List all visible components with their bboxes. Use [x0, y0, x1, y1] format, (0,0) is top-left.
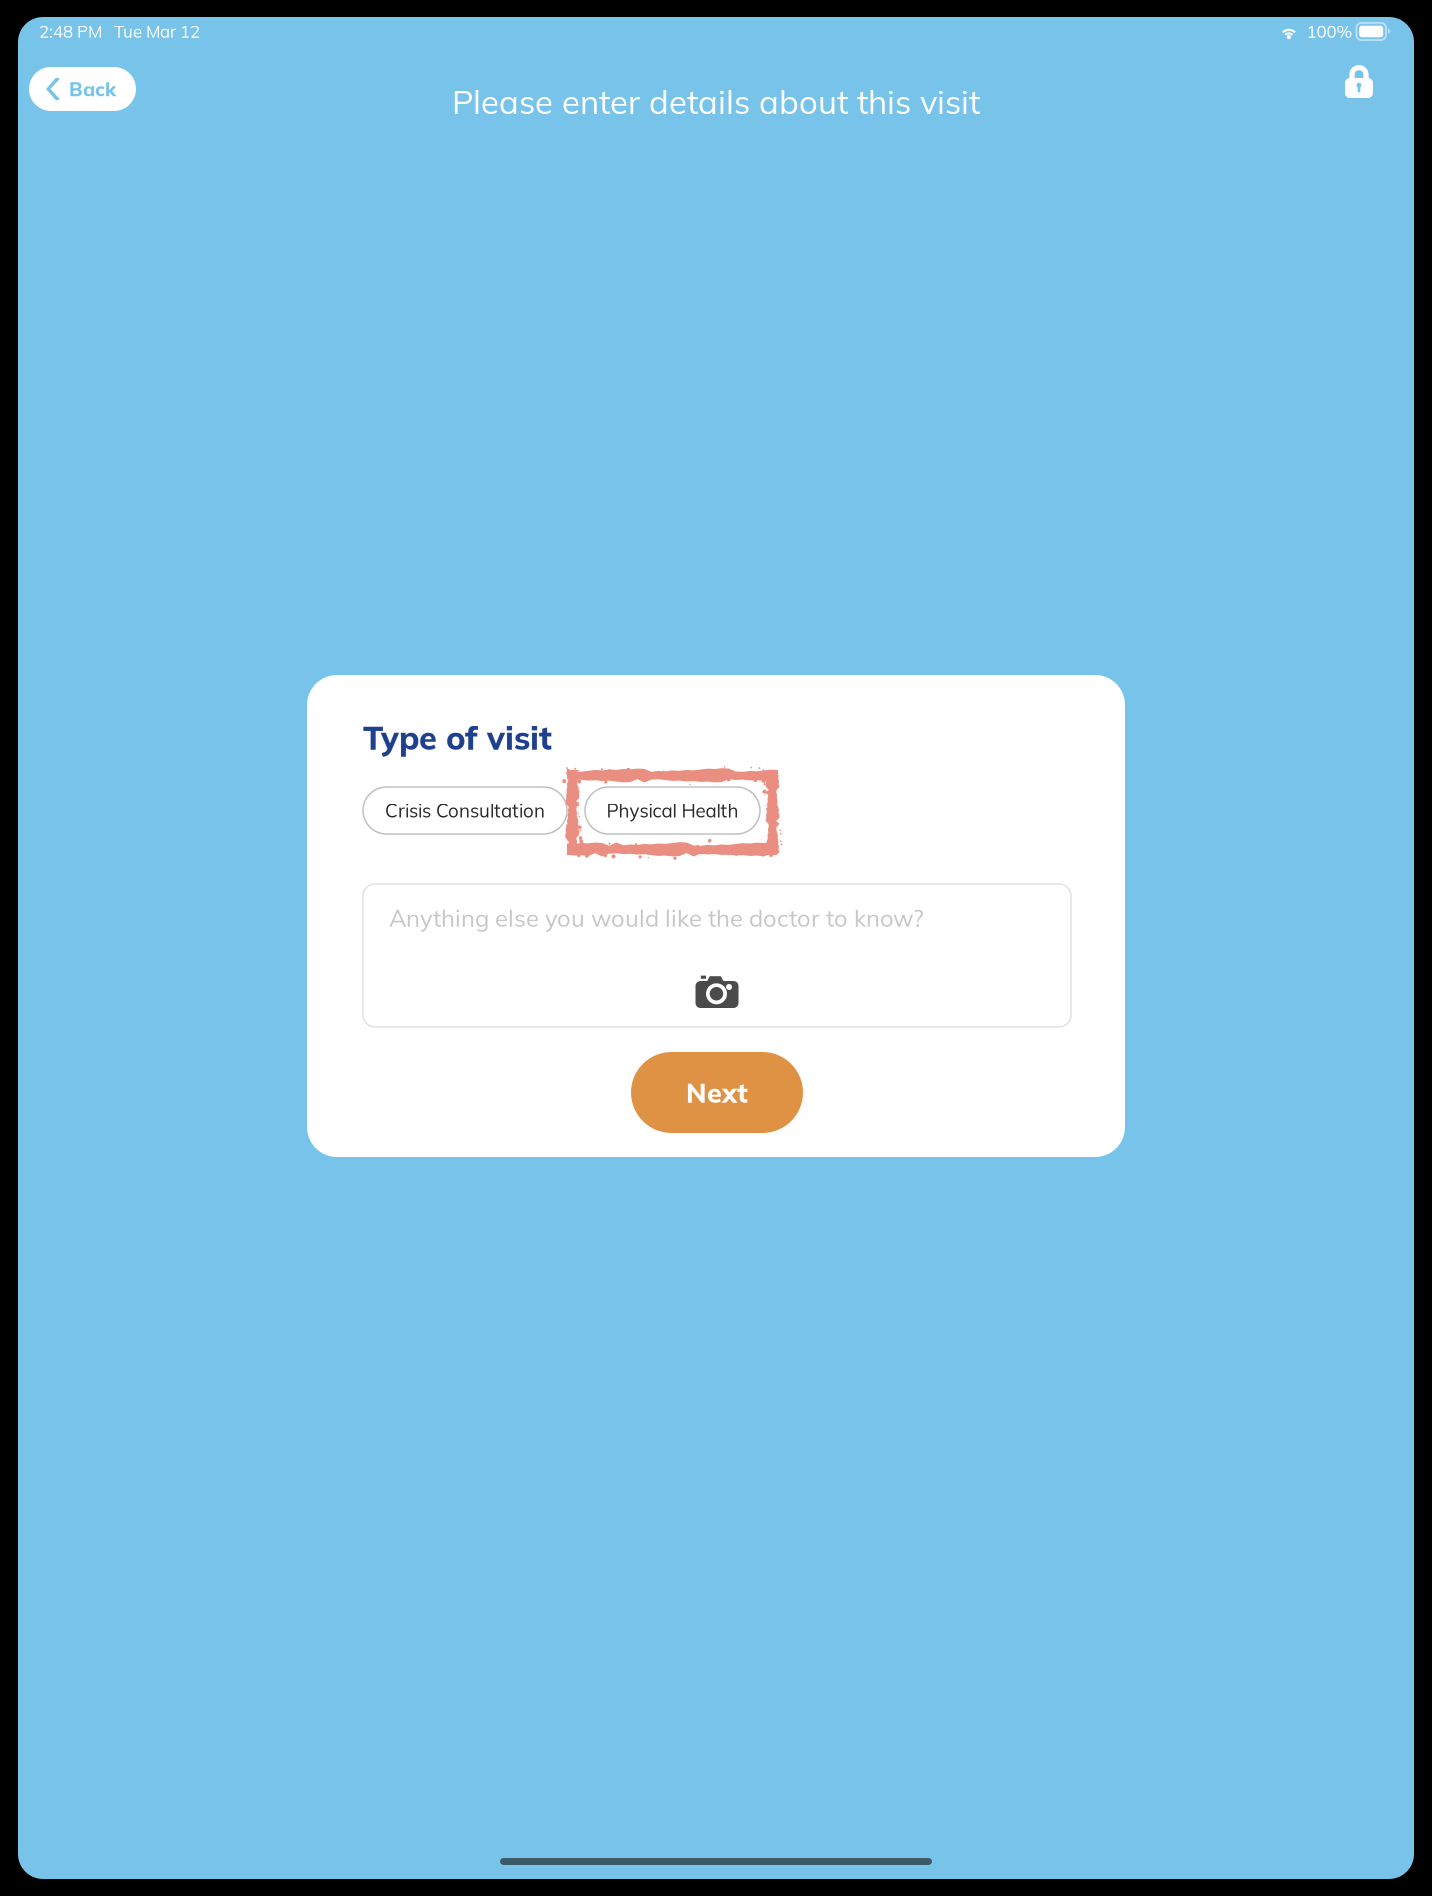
button[interactable]: Back — [29, 67, 136, 111]
button[interactable]: Add photo — [695, 975, 738, 1008]
staticText: Back — [69, 77, 116, 101]
button[interactable]: Next — [631, 1052, 803, 1133]
staticText: Type of visit — [363, 717, 552, 758]
staticText: Next — [686, 1075, 748, 1109]
button[interactable]: Physical Health — [585, 787, 760, 834]
staticText: 2:48 PM Tue Mar 12 — [39, 21, 200, 42]
staticText: 100% — [1298, 21, 1356, 42]
staticText: Physical Health — [606, 799, 738, 822]
staticText: Crisis Consultation — [385, 799, 545, 822]
staticText: Please enter details about this visit — [452, 81, 980, 122]
staticText: Anything else you would like the doctor … — [389, 903, 924, 933]
button[interactable]: Crisis Consultation — [363, 787, 567, 834]
button[interactable]: Locked — [1345, 65, 1373, 98]
